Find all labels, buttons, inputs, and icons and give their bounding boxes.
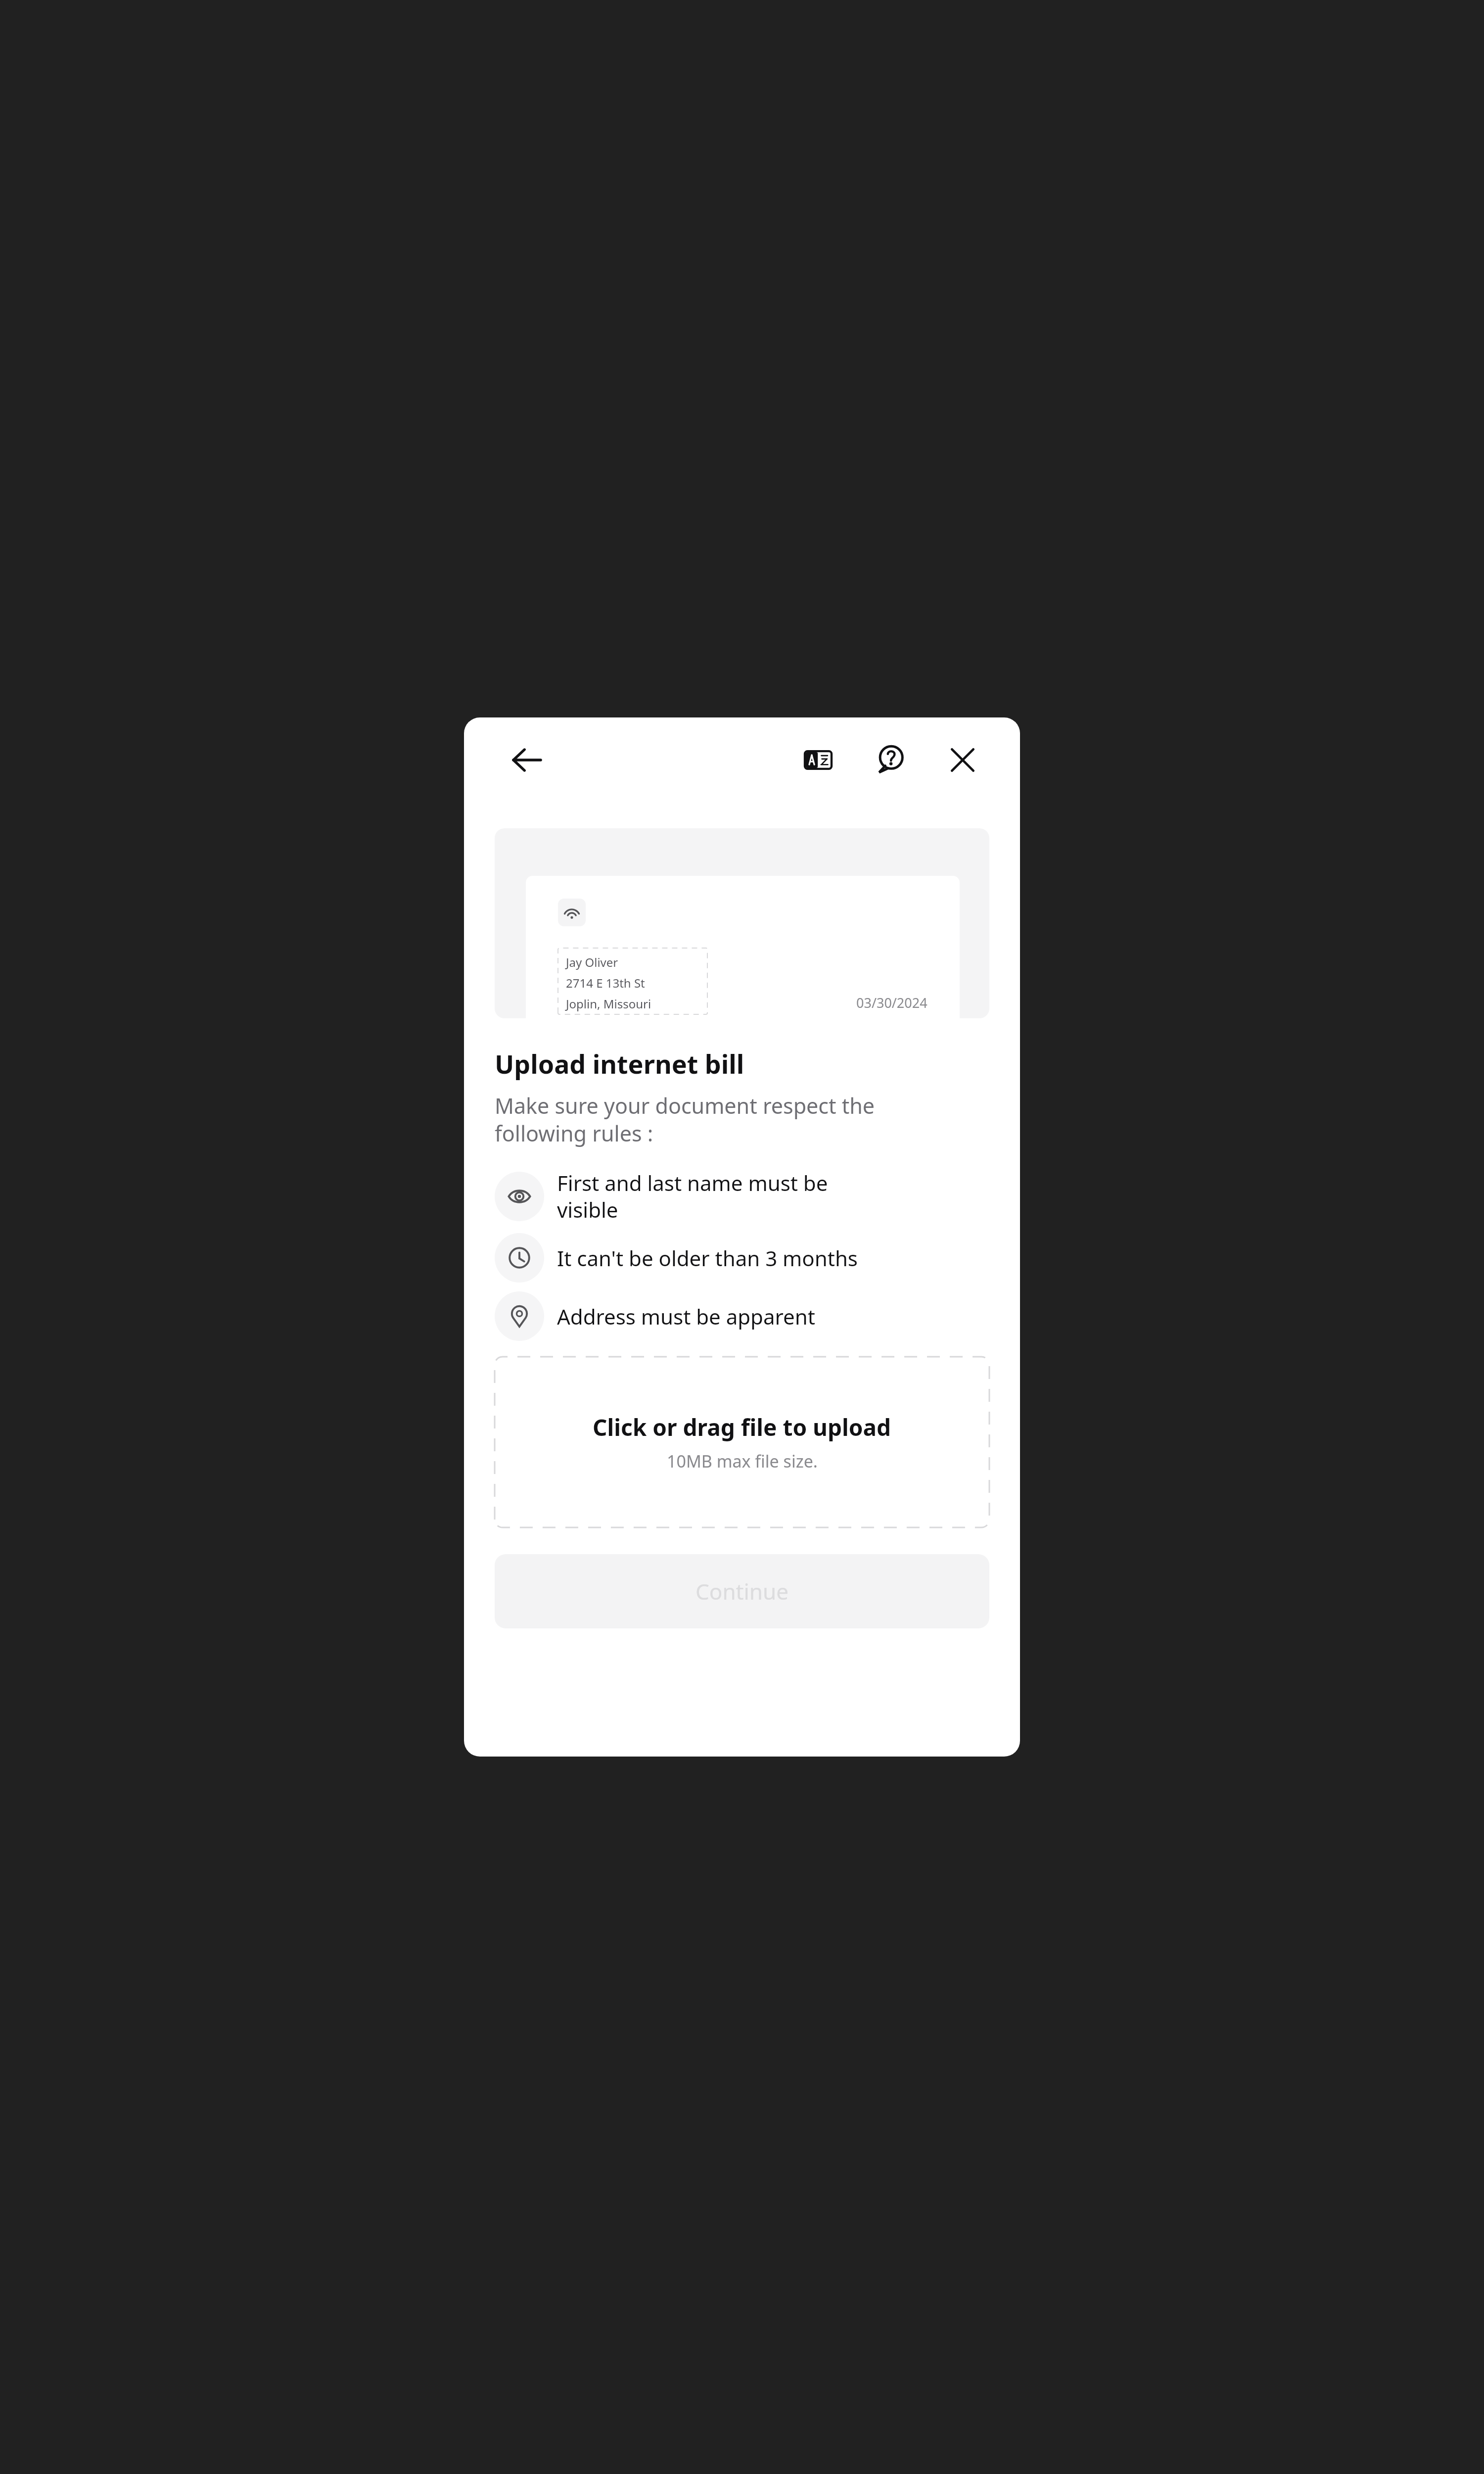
staticText: Make sure your document respect the foll… <box>495 1091 875 1148</box>
staticText: Joplin, Missouri <box>566 996 651 1012</box>
button[interactable]: Help <box>868 737 913 783</box>
staticText: It can't be older than 3 months <box>557 1244 858 1272</box>
button[interactable]: Back <box>503 736 550 784</box>
staticText: 10MB max file size. <box>667 1450 818 1473</box>
button[interactable]: Close <box>940 737 985 783</box>
button[interactable]: Translate <box>795 737 841 783</box>
button[interactable]: Address must be apparent <box>495 1291 989 1341</box>
staticText: Click or drag file to upload <box>593 1412 891 1443</box>
staticText: Address must be apparent <box>557 1302 815 1331</box>
button[interactable]: Click or drag file to upload <box>495 1357 989 1527</box>
staticText: 2714 E 13th St <box>566 975 645 991</box>
button[interactable]: It can't be older than 3 months <box>495 1233 989 1283</box>
staticText: First and last name must be visible <box>557 1169 828 1224</box>
staticText: 03/30/2024 <box>856 994 927 1012</box>
button[interactable]: First and last name must be visible <box>495 1169 989 1224</box>
staticText: Continue <box>696 1576 789 1606</box>
staticText: Jay Oliver <box>566 954 618 970</box>
staticText: Upload internet bill <box>495 1046 744 1081</box>
